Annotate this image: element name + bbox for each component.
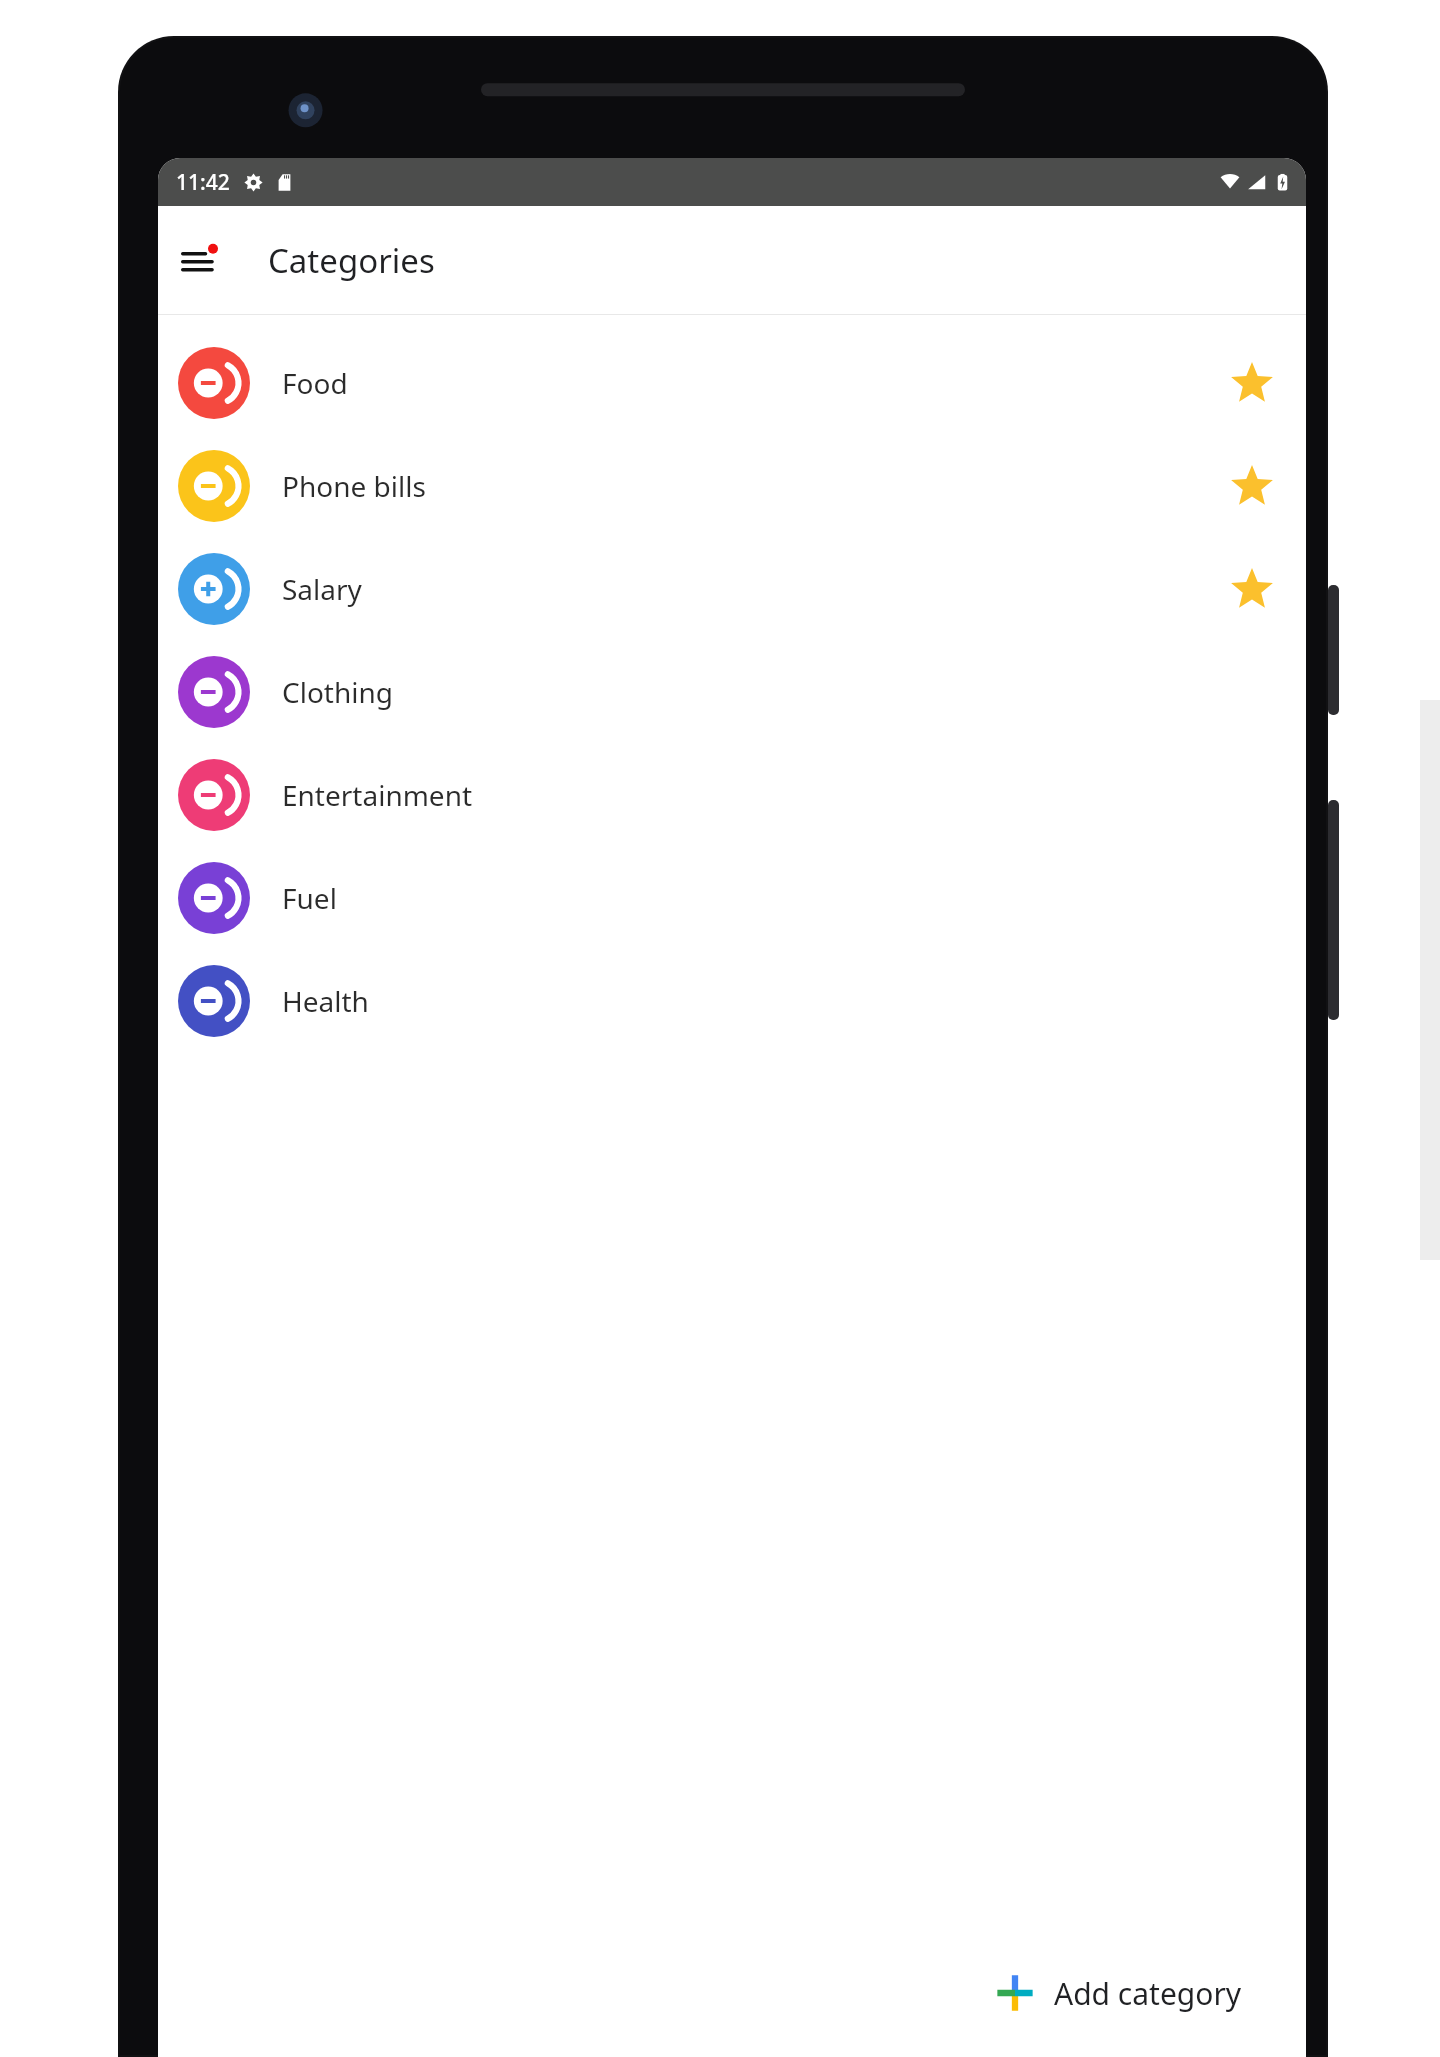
staticText: Entertainment <box>282 776 473 814</box>
button[interactable]: Favourite Food <box>1224 355 1280 411</box>
button[interactable]: Phone bills <box>158 434 1306 537</box>
button[interactable]: Fuel <box>158 846 1306 949</box>
button[interactable]: Health <box>158 949 1306 1052</box>
staticText: Add category <box>1054 1973 1242 2014</box>
staticText: Food <box>282 364 348 402</box>
staticText: Categories <box>268 238 435 283</box>
button[interactable]: Favourite Phone bills <box>1224 458 1280 514</box>
staticText: Clothing <box>282 673 394 711</box>
staticText: Fuel <box>282 879 337 917</box>
button[interactable]: Add category <box>960 1947 1280 2039</box>
button[interactable]: Favourite Salary <box>1224 561 1280 617</box>
staticText: Phone bills <box>282 467 426 505</box>
button[interactable]: Clothing <box>158 640 1306 743</box>
staticText: Health <box>282 982 369 1020</box>
staticText: 11:42 <box>176 168 230 197</box>
button[interactable]: Salary <box>158 537 1306 640</box>
button[interactable]: Entertainment <box>158 743 1306 846</box>
button[interactable]: Open navigation menu <box>172 231 230 289</box>
button[interactable]: Food <box>158 331 1306 434</box>
staticText: Salary <box>282 570 362 608</box>
